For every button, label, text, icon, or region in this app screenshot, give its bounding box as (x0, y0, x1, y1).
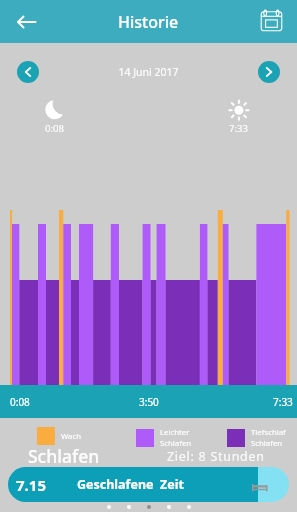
staticText: Geschlafene Zeit (77, 476, 184, 493)
button[interactable]: Back (15, 10, 39, 34)
button[interactable]: 7.15 (8, 467, 289, 502)
button[interactable]: Calendar (259, 9, 283, 33)
staticText: Ziel: 8 Stunden (167, 448, 265, 465)
staticText: Schlafen (160, 438, 192, 449)
staticText: 0:08 (45, 122, 64, 135)
staticText: Schlafen (28, 444, 100, 468)
button[interactable]: Previous day (17, 61, 39, 83)
staticText: 7.15 (16, 475, 46, 495)
staticText: 7:33 (229, 122, 248, 135)
staticText: Tiefschlaf (251, 427, 286, 438)
staticText: 7:33 (273, 395, 293, 409)
button[interactable]: Next day (258, 61, 280, 83)
staticText: Leichter (160, 427, 190, 438)
staticText: Historie (118, 11, 179, 33)
staticText: Schlafen (251, 438, 283, 449)
staticText: 3:50 (139, 395, 159, 409)
staticText: Wach (61, 431, 82, 442)
staticText: 0:08 (10, 395, 30, 409)
staticText: 14 Juni 2017 (0, 65, 297, 79)
